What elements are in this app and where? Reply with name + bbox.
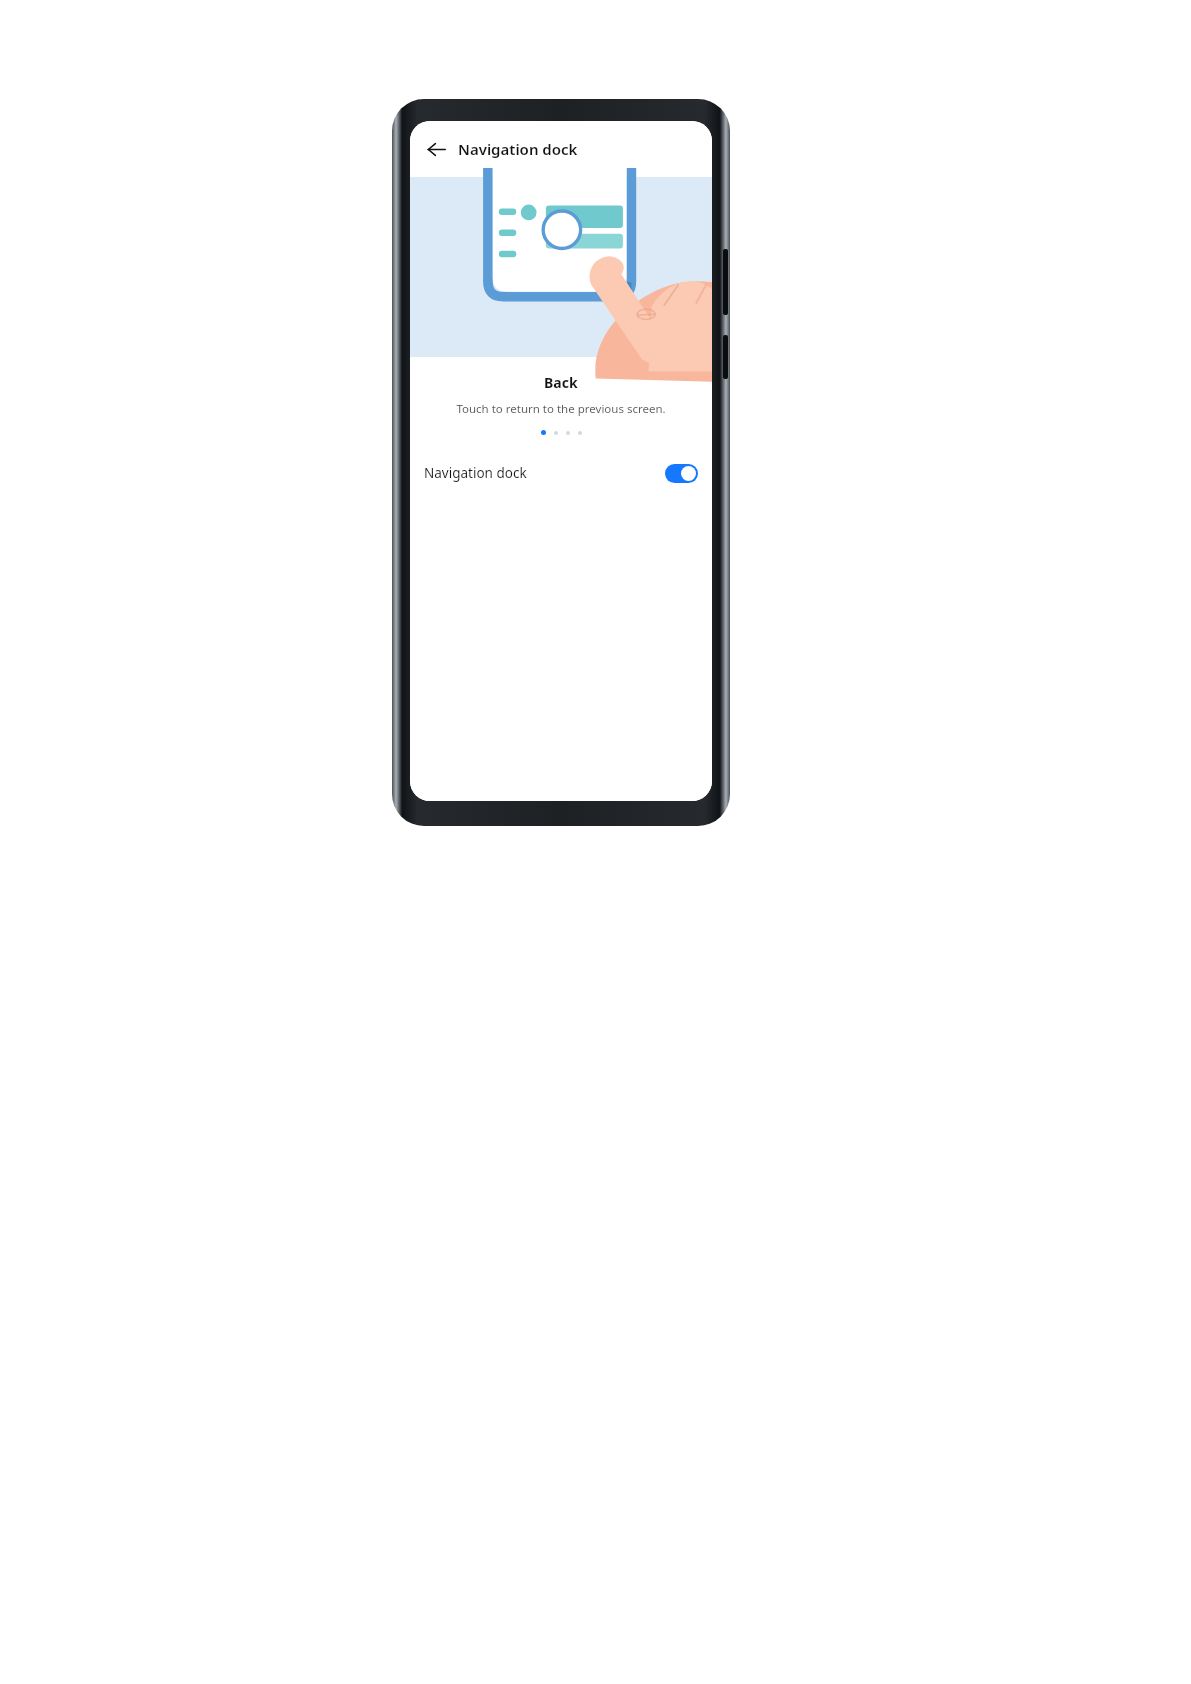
staticText: Touch to return to the previous screen. bbox=[456, 401, 666, 417]
button[interactable]: Back bbox=[419, 132, 453, 166]
button[interactable]: Navigation dock bbox=[410, 447, 712, 499]
staticText: Navigation dock bbox=[424, 464, 527, 482]
staticText: Back bbox=[544, 373, 578, 392]
button[interactable]: Navigation dock toggle, on bbox=[665, 464, 698, 483]
staticText: Navigation dock bbox=[458, 139, 578, 159]
